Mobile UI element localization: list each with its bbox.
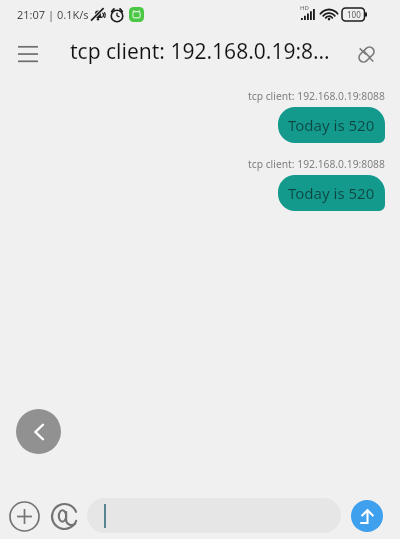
staticText: tcp client: 192.168.0.19:8…: [70, 37, 330, 66]
button[interactable]: Send: [351, 500, 383, 532]
button[interactable]: Disconnect: [347, 35, 385, 73]
button[interactable]: Mention: [48, 500, 80, 532]
staticText: Today is 520: [288, 115, 375, 135]
staticText: 100: [347, 9, 361, 20]
staticText: tcp client: 192.168.0.19:8088: [248, 89, 385, 103]
staticText: Today is 520: [288, 183, 375, 203]
button[interactable]: Today is 520: [278, 175, 385, 211]
button[interactable]: Menu: [8, 31, 48, 71]
staticText: tcp client: 192.168.0.19:8088: [248, 157, 385, 171]
button[interactable]: Today is 520: [278, 107, 385, 143]
button[interactable]: [87, 498, 341, 533]
staticText: 21:07 | 0.1K/s: [17, 7, 89, 22]
staticText: HD: [300, 4, 309, 12]
button[interactable]: Add: [8, 500, 40, 532]
button[interactable]: Back: [16, 409, 61, 454]
